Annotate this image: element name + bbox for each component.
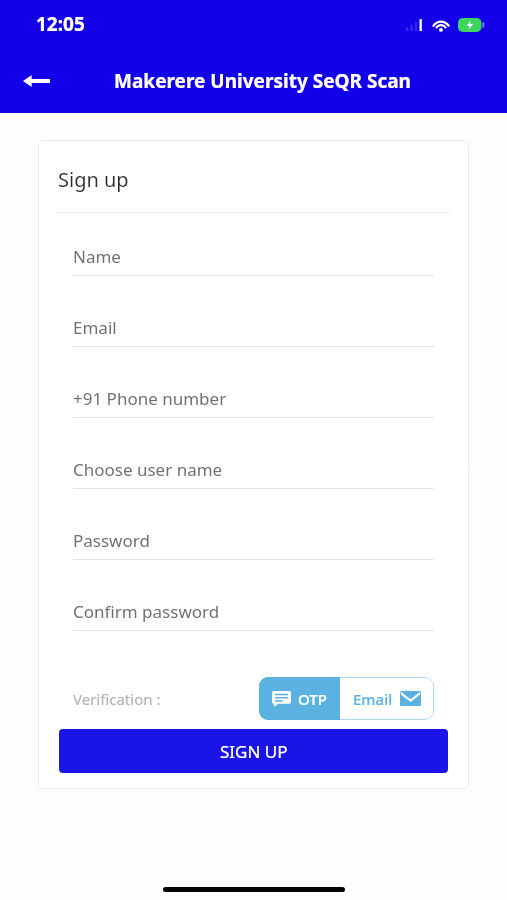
button[interactable]: Name <box>73 245 434 316</box>
staticText: +91 Phone number <box>73 387 227 410</box>
staticText: Email <box>353 689 393 709</box>
staticText: Verification : <box>73 689 161 709</box>
button[interactable]: +91 Phone number <box>73 387 434 458</box>
staticText: Password <box>73 529 150 552</box>
staticText: 12:05 <box>36 11 85 37</box>
staticText: Choose user name <box>73 458 223 481</box>
staticText: Sign up <box>58 166 129 193</box>
staticText: SIGN UP <box>220 740 288 763</box>
staticText: Email <box>73 316 117 339</box>
button[interactable]: Confirm password <box>73 600 434 671</box>
button[interactable]: SIGN UP <box>59 729 448 773</box>
staticText: Name <box>73 245 121 268</box>
button[interactable]: Choose user name <box>73 458 434 529</box>
button[interactable]: Email <box>73 316 434 387</box>
staticText: Confirm password <box>73 600 220 623</box>
staticText: Makerere University SeQR Scan <box>114 68 411 94</box>
button[interactable]: Email <box>340 677 434 720</box>
staticText: OTP <box>298 689 327 709</box>
button[interactable]: Back <box>13 58 59 104</box>
button[interactable]: OTP <box>259 677 340 720</box>
button[interactable]: Password <box>73 529 434 600</box>
